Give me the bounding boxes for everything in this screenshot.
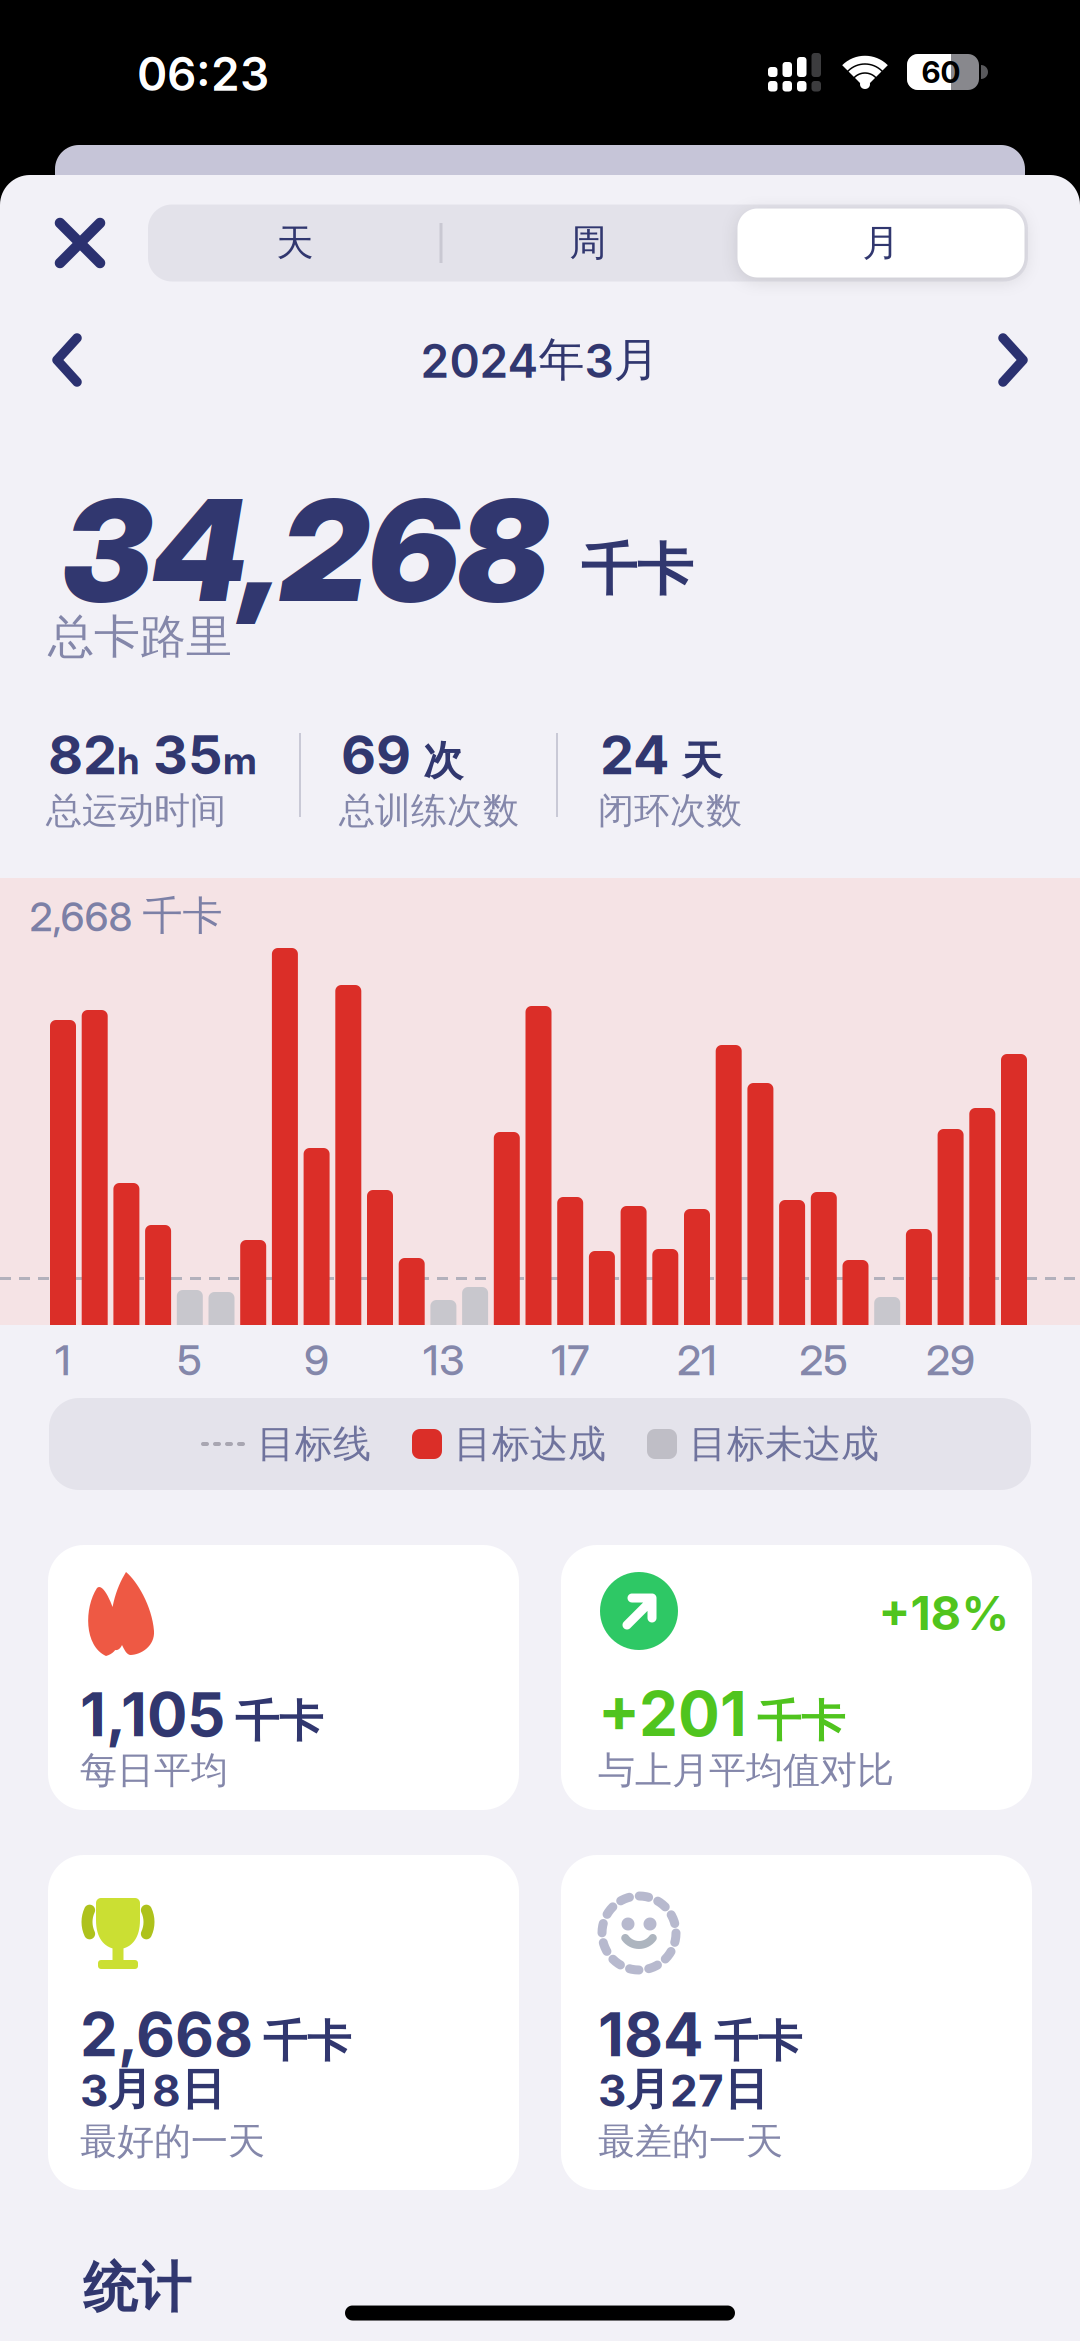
staticText: 29: [926, 1335, 975, 1385]
staticText: 1,105: [80, 1678, 225, 1751]
staticText: 千卡: [581, 535, 693, 605]
button[interactable]: Previous month: [45, 330, 89, 390]
staticText: 2,668: [80, 1998, 253, 2071]
staticText: 184: [598, 1998, 704, 2071]
button[interactable]: Close: [44, 207, 116, 279]
staticText: 目标未达成: [689, 1420, 879, 1468]
staticText: 06:23: [137, 46, 269, 102]
staticText: 13: [423, 1335, 464, 1385]
staticText: 统计: [83, 2254, 191, 2322]
staticText: 最好的一天: [80, 2118, 265, 2165]
staticText: 24: [600, 722, 670, 787]
staticText: 9: [304, 1335, 329, 1385]
button[interactable]: Next month: [991, 330, 1035, 390]
staticText: 天: [276, 220, 313, 266]
staticText: 17: [551, 1335, 589, 1385]
staticText: 1: [55, 1335, 71, 1385]
staticText: 总卡路里: [48, 608, 232, 666]
staticText: m: [223, 737, 257, 783]
staticText: 每日平均: [80, 1747, 228, 1794]
staticText: +201: [598, 1676, 747, 1751]
staticText: 3月27日: [598, 2062, 768, 2117]
staticText: 35: [140, 722, 223, 787]
staticText: 闭环次数: [598, 788, 742, 833]
staticText: 总运动时间: [46, 788, 226, 833]
staticText: 次: [423, 736, 463, 786]
staticText: h: [117, 737, 140, 783]
staticText: 千卡: [263, 2014, 351, 2069]
button[interactable]: 月: [741, 208, 1021, 278]
staticText: 2,668 千卡: [29, 891, 222, 941]
staticText: 3月8日: [80, 2062, 225, 2117]
staticText: 周: [569, 220, 606, 266]
staticText: 25: [799, 1335, 848, 1385]
staticText: 34,268: [62, 465, 548, 635]
staticText: 总训练次数: [339, 788, 519, 833]
staticText: 千卡: [757, 1694, 845, 1749]
staticText: 5: [177, 1335, 202, 1385]
staticText: 82: [48, 722, 117, 787]
staticText: 目标线: [257, 1420, 371, 1468]
staticText: 月: [862, 220, 899, 266]
staticText: 千卡: [714, 2014, 802, 2069]
staticText: 天: [682, 736, 722, 786]
staticText: 2024年3月: [420, 331, 659, 389]
staticText: 69: [341, 722, 411, 787]
staticText: 千卡: [235, 1694, 323, 1749]
staticText: 与上月平均值对比: [598, 1747, 894, 1794]
staticText: 最差的一天: [598, 2118, 783, 2165]
staticText: 21: [677, 1335, 717, 1385]
staticText: +18%: [878, 1585, 1009, 1641]
button[interactable]: 周: [448, 208, 728, 278]
staticText: 目标达成: [454, 1420, 606, 1468]
staticText: 60: [921, 54, 960, 90]
button[interactable]: 天: [155, 208, 435, 278]
